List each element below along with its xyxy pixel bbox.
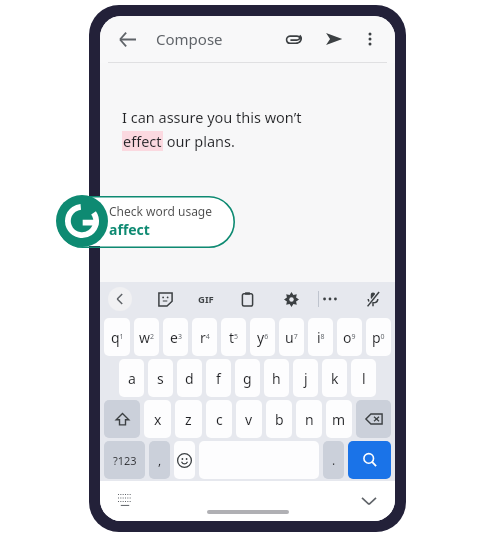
staticText: b <box>275 410 284 429</box>
staticText: GIF <box>198 293 214 306</box>
staticText: q1 <box>111 328 124 347</box>
button[interactable]: z <box>175 400 202 438</box>
staticText: k <box>331 369 339 388</box>
staticText: u7 <box>285 328 298 347</box>
button[interactable]: k <box>322 359 347 397</box>
button[interactable]: u7 <box>279 318 304 356</box>
button[interactable]: More options <box>357 26 383 52</box>
button[interactable]: Attach file <box>279 24 309 54</box>
button[interactable]: Clipboard <box>236 288 258 310</box>
button[interactable]: d <box>177 359 202 397</box>
staticText: i8 <box>317 328 325 347</box>
staticText: Compose <box>156 29 223 49</box>
staticText: y6 <box>257 328 269 347</box>
button[interactable]: Settings <box>280 288 302 310</box>
button[interactable]: Stickers <box>154 288 176 310</box>
button[interactable]: Switch keyboard <box>114 490 136 512</box>
button[interactable]: q1 <box>104 318 130 356</box>
button[interactable]: f <box>206 359 231 397</box>
staticText: . <box>332 452 336 468</box>
staticText: I can assure you this won’t <box>122 107 302 127</box>
button[interactable]: t5 <box>221 318 246 356</box>
staticText: our plans. <box>163 131 235 151</box>
button[interactable]: Back <box>112 24 142 54</box>
staticText: m <box>332 410 346 429</box>
staticText: w2 <box>139 328 155 347</box>
staticText: c <box>216 410 223 429</box>
button[interactable]: . <box>323 441 344 479</box>
button[interactable]: , <box>149 441 170 479</box>
button[interactable]: b <box>266 400 292 438</box>
staticText: f <box>216 369 221 388</box>
staticText: l <box>362 369 366 388</box>
button[interactable]: Emoji <box>174 441 195 479</box>
button[interactable]: i8 <box>308 318 333 356</box>
staticText: d <box>185 369 194 388</box>
button[interactable]: Backspace <box>356 400 391 438</box>
staticText: effect <box>123 131 162 151</box>
button[interactable]: Close toolbar <box>108 287 132 311</box>
staticText: o9 <box>343 328 356 347</box>
button[interactable]: r4 <box>192 318 217 356</box>
staticText: s <box>157 369 164 388</box>
staticText: a <box>128 369 136 388</box>
staticText: , <box>158 452 162 468</box>
button[interactable]: Hide keyboard <box>357 489 381 513</box>
staticText: j <box>304 369 308 388</box>
button[interactable]: w2 <box>134 318 159 356</box>
staticText: g <box>243 369 252 388</box>
staticText: n <box>305 410 314 429</box>
button[interactable]: n <box>296 400 322 438</box>
staticText: v <box>245 410 253 429</box>
button[interactable]: Grammarly <box>56 195 108 247</box>
button[interactable]: l <box>351 359 376 397</box>
button[interactable]: x <box>144 400 171 438</box>
button[interactable]: v <box>236 400 262 438</box>
button[interactable]: p0 <box>366 318 391 356</box>
button[interactable]: m <box>326 400 352 438</box>
staticText: x <box>154 410 162 429</box>
staticText: ?123 <box>113 453 137 468</box>
button[interactable]: s <box>148 359 173 397</box>
button[interactable]: Check word usage <box>57 196 235 246</box>
button[interactable]: Shift <box>104 400 140 438</box>
staticText: e3 <box>170 328 182 347</box>
button[interactable]: o9 <box>337 318 362 356</box>
button[interactable]: Search <box>348 441 391 479</box>
button[interactable]: More <box>319 288 341 310</box>
staticText: affect <box>109 220 150 239</box>
staticText: h <box>272 369 281 388</box>
button[interactable]: ?123 <box>104 441 145 479</box>
button[interactable]: h <box>264 359 289 397</box>
button[interactable]: g <box>235 359 260 397</box>
button[interactable]: c <box>206 400 232 438</box>
button[interactable]: e3 <box>163 318 188 356</box>
staticText: r4 <box>200 328 210 347</box>
staticText: t5 <box>229 328 239 347</box>
button[interactable]: j <box>293 359 318 397</box>
button[interactable]: y6 <box>250 318 275 356</box>
staticText: z <box>185 410 192 429</box>
button[interactable]: GIF <box>198 288 214 310</box>
staticText: Check word usage <box>109 203 213 219</box>
staticText: p0 <box>372 328 385 347</box>
button[interactable]: Send <box>319 24 349 54</box>
button[interactable]: Microphone off <box>363 288 383 310</box>
button[interactable]: a <box>119 359 144 397</box>
